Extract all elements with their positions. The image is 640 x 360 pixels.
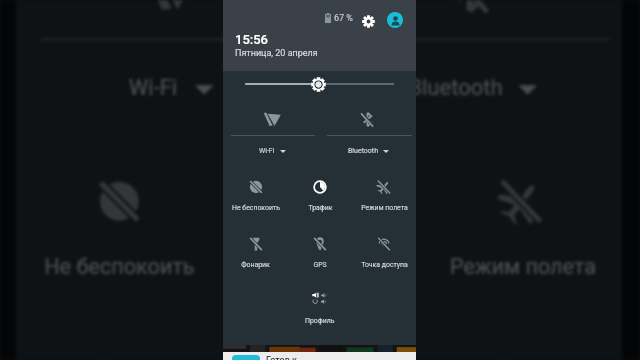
staticText: Не беспокоить: [44, 255, 195, 280]
staticText: Bluetooth: [408, 76, 502, 101]
button[interactable]: Точка доступа: [352, 232, 416, 274]
staticText: Профиль: [305, 317, 335, 325]
staticText: Трафик: [308, 204, 333, 212]
staticText: Bluetooth: [348, 147, 378, 155]
button[interactable]: Трафик: [220, 164, 421, 296]
staticText: Трафик: [283, 255, 361, 280]
staticText: Режим полета: [449, 255, 597, 280]
staticText: Фонарик: [241, 261, 270, 269]
button[interactable]: Brightness: [223, 72, 416, 96]
staticText: 67 %: [334, 13, 353, 24]
staticText: Готов к: [266, 355, 297, 360]
button[interactable]: Не беспокоить: [16, 164, 220, 296]
button[interactable]: GPS: [220, 343, 421, 360]
staticText: Пятница, 20 апреля: [235, 48, 318, 58]
staticText: Не беспокоить: [232, 204, 280, 212]
staticText: 15:56: [235, 32, 268, 47]
button[interactable]: Settings: [359, 12, 377, 30]
staticText: Режим полета: [361, 204, 408, 212]
button[interactable]: Режим полета: [352, 175, 416, 217]
button[interactable]: Wi-Fi: [16, 0, 317, 110]
button[interactable]: User profile: [387, 12, 403, 28]
button[interactable]: Фонарик: [223, 232, 288, 274]
button[interactable]: Трафик: [288, 175, 352, 217]
button[interactable]: Режим полета: [421, 164, 622, 296]
button[interactable]: Bluetooth: [319, 108, 416, 158]
button[interactable]: Профиль: [288, 286, 352, 330]
button[interactable]: GPS: [288, 232, 352, 274]
button[interactable]: Не беспокоить: [223, 175, 288, 217]
staticText: Wi-Fi: [129, 76, 179, 101]
button[interactable]: Wi-Fi: [223, 108, 319, 158]
staticText: GPS: [313, 261, 327, 269]
staticText: Wi-Fi: [259, 147, 275, 155]
button[interactable]: Bluetooth: [317, 0, 622, 110]
staticText: Точка доступа: [361, 261, 408, 269]
